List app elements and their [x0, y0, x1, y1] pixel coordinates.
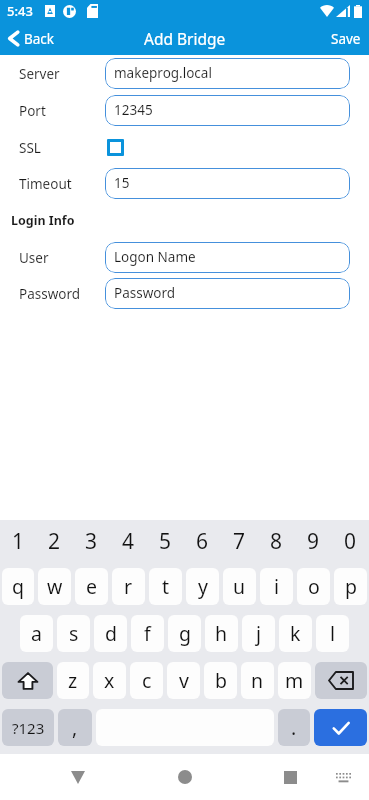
- staticText: s: [69, 620, 79, 647]
- button[interactable]: Home: [156, 754, 213, 800]
- button[interactable]: 15: [105, 168, 350, 199]
- staticText: l: [330, 620, 336, 647]
- button[interactable]: Back: [50, 754, 106, 800]
- staticText: Save: [331, 30, 361, 48]
- staticText: p: [345, 573, 357, 600]
- button[interactable]: i: [260, 568, 293, 605]
- button[interactable]: y: [186, 568, 219, 605]
- button[interactable]: h: [205, 615, 238, 652]
- staticText: Port: [19, 102, 46, 120]
- button[interactable]: .: [278, 709, 310, 746]
- staticText: 2: [48, 527, 61, 556]
- button[interactable]: 0: [332, 520, 369, 563]
- staticText: n: [251, 667, 264, 694]
- button[interactable]: r: [112, 568, 145, 605]
- button[interactable]: 9: [295, 520, 332, 563]
- staticText: b: [215, 667, 227, 694]
- staticText: .: [291, 714, 297, 741]
- button[interactable]: g: [168, 615, 201, 652]
- staticText: 1: [12, 527, 25, 556]
- button[interactable]: 12345: [105, 95, 350, 126]
- staticText: d: [105, 620, 117, 647]
- button[interactable]: j: [242, 615, 275, 652]
- button[interactable]: w: [38, 568, 71, 605]
- staticText: j: [256, 620, 262, 647]
- button[interactable]: s: [57, 615, 90, 652]
- button[interactable]: 7: [221, 520, 258, 563]
- button[interactable]: Enter: [314, 709, 367, 746]
- button[interactable]: Save: [319, 22, 369, 55]
- staticText: ?123: [12, 718, 45, 738]
- button[interactable]: ,: [58, 709, 92, 746]
- button[interactable]: n: [241, 662, 274, 699]
- staticText: 3: [85, 527, 98, 556]
- staticText: 12345: [114, 101, 153, 119]
- staticText: i: [274, 573, 280, 600]
- button[interactable]: a: [20, 615, 53, 652]
- button[interactable]: u: [223, 568, 256, 605]
- button[interactable]: q: [2, 568, 34, 605]
- staticText: 0: [344, 527, 357, 556]
- staticText: h: [215, 620, 228, 647]
- staticText: 8: [270, 527, 283, 556]
- button[interactable]: 5: [147, 520, 184, 563]
- staticText: Back: [24, 30, 55, 48]
- staticText: f: [144, 620, 151, 647]
- staticText: Server: [19, 65, 60, 83]
- button[interactable]: 2: [36, 520, 73, 563]
- staticText: q: [12, 573, 24, 600]
- button[interactable]: k: [279, 615, 312, 652]
- staticText: u: [233, 573, 246, 600]
- button[interactable]: makeprog.local: [105, 58, 350, 89]
- staticText: ,: [72, 714, 78, 741]
- staticText: g: [179, 620, 191, 647]
- button[interactable]: o: [297, 568, 330, 605]
- button[interactable]: l: [316, 615, 349, 652]
- staticText: Password: [114, 284, 176, 302]
- staticText: 5:43: [7, 2, 33, 20]
- staticText: 15: [114, 174, 130, 192]
- button[interactable]: d: [94, 615, 127, 652]
- button[interactable]: 6: [184, 520, 221, 563]
- button[interactable]: f: [131, 615, 164, 652]
- staticText: User: [19, 249, 49, 267]
- button[interactable]: Shift: [2, 662, 53, 699]
- button[interactable]: c: [130, 662, 163, 699]
- button[interactable]: Switch keyboard: [320, 754, 367, 800]
- staticText: Timeout: [19, 175, 72, 193]
- button[interactable]: Logon Name: [105, 242, 350, 273]
- staticText: SSL: [19, 139, 41, 156]
- staticText: w: [47, 573, 63, 600]
- staticText: t: [162, 573, 170, 600]
- staticText: v: [179, 667, 189, 694]
- button[interactable]: x: [93, 662, 126, 699]
- staticText: e: [86, 573, 97, 600]
- staticText: a: [31, 620, 42, 647]
- staticText: r: [124, 573, 133, 600]
- button[interactable]: 4: [110, 520, 147, 563]
- button[interactable]: Password: [105, 278, 350, 309]
- staticText: Logon Name: [114, 248, 196, 266]
- button[interactable]: z: [57, 662, 89, 699]
- staticText: 4: [122, 527, 135, 556]
- button[interactable]: SSL checkbox: [107, 139, 124, 156]
- button[interactable]: 1: [0, 520, 36, 563]
- staticText: 7: [233, 527, 246, 556]
- button[interactable]: p: [334, 568, 367, 605]
- button[interactable]: e: [75, 568, 108, 605]
- staticText: k: [290, 620, 301, 647]
- button[interactable]: m: [278, 662, 311, 699]
- button[interactable]: t: [149, 568, 182, 605]
- button[interactable]: 3: [73, 520, 110, 563]
- button[interactable]: ?123: [2, 709, 54, 746]
- staticText: x: [104, 667, 115, 694]
- button[interactable]: Back: [0, 22, 65, 55]
- button[interactable]: b: [204, 662, 237, 699]
- button[interactable]: Recents: [262, 754, 319, 800]
- staticText: c: [142, 667, 152, 694]
- button[interactable]: v: [167, 662, 200, 699]
- button[interactable]: Backspace: [315, 662, 367, 699]
- button[interactable]: 8: [258, 520, 295, 563]
- staticText: 9: [307, 527, 320, 556]
